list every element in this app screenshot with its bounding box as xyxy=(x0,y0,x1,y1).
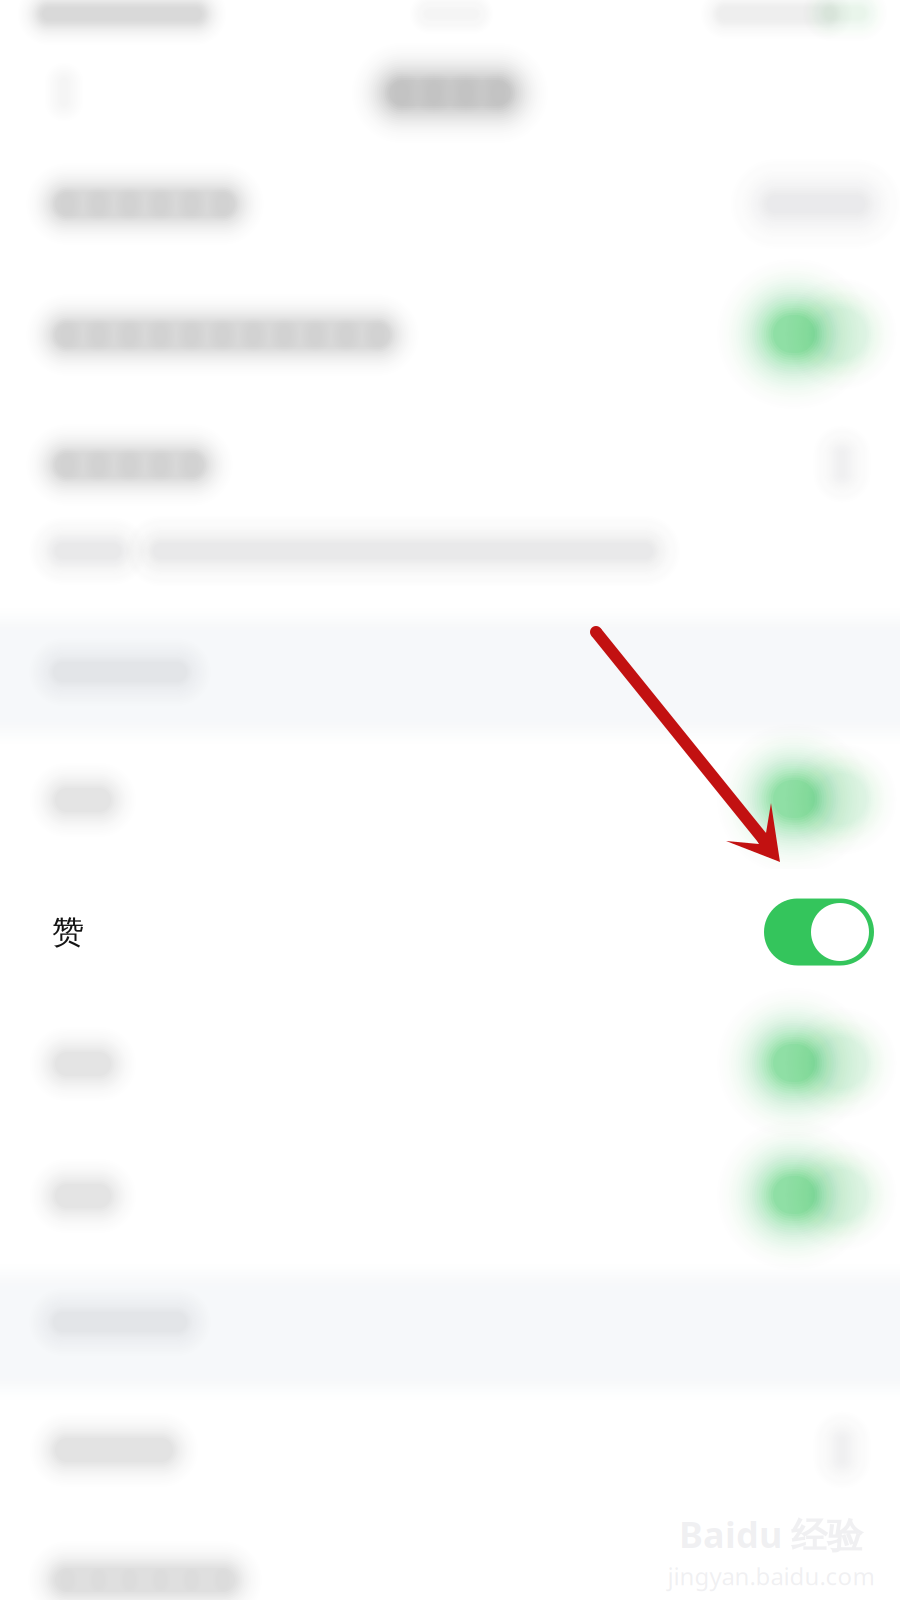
staticText: 赞 xyxy=(52,912,84,952)
staticText: Baidu 经验 xyxy=(679,1510,863,1558)
button[interactable]: 赞 xyxy=(0,869,900,995)
staticText: jingyan.baidu.com xyxy=(667,1560,874,1592)
